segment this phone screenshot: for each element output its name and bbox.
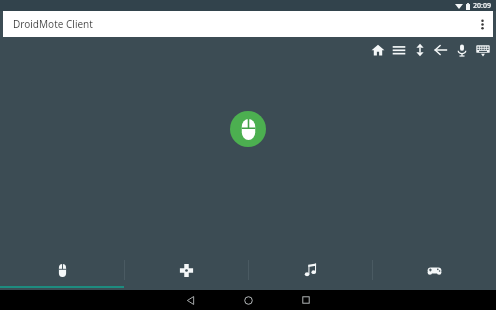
button[interactable]: D-Pad (125, 254, 248, 286)
button[interactable]: Mouse control (230, 111, 266, 147)
button[interactable]: Mouse (0, 254, 124, 286)
button[interactable]: More options (471, 11, 493, 37)
button[interactable]: Scroll (409, 39, 430, 61)
button[interactable]: Home (367, 39, 388, 61)
button[interactable]: Menu (388, 39, 409, 61)
staticText: 20:09 (473, 1, 491, 11)
button[interactable]: Keyboard (472, 39, 493, 61)
button[interactable]: Media (249, 254, 372, 286)
button[interactable]: Recent apps (277, 290, 335, 310)
button[interactable]: Gamepad (373, 254, 496, 286)
button[interactable]: Back (161, 290, 219, 310)
staticText: DroidMote Client (13, 17, 93, 31)
button[interactable]: Back (430, 39, 451, 61)
button[interactable]: Home (219, 290, 277, 310)
button[interactable]: Voice input (451, 39, 472, 61)
